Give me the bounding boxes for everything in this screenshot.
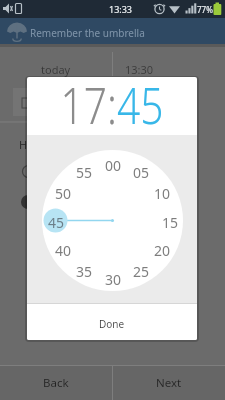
staticText: 10 bbox=[152, 184, 172, 203]
staticText: 35 bbox=[74, 262, 94, 281]
staticText: 50 bbox=[53, 184, 73, 203]
staticText: 13:30 bbox=[125, 62, 154, 77]
button[interactable]: Next bbox=[113, 366, 225, 400]
staticText: 15 bbox=[160, 213, 180, 232]
button[interactable]: Done bbox=[27, 303, 197, 340]
staticText: 13:33 bbox=[109, 3, 133, 15]
staticText: 40 bbox=[53, 241, 73, 260]
staticText: Back bbox=[43, 375, 69, 391]
staticText: Remember the umbrella bbox=[30, 26, 145, 40]
staticText: 17:45 bbox=[60, 77, 163, 130]
staticText: today bbox=[41, 62, 71, 77]
staticText: 55 bbox=[74, 163, 94, 182]
staticText: 00 bbox=[103, 156, 123, 175]
button[interactable]: Back bbox=[0, 366, 112, 400]
staticText: 30 bbox=[103, 270, 123, 289]
staticText: 25 bbox=[131, 262, 151, 281]
staticText: 20 bbox=[152, 241, 172, 260]
staticText: Done bbox=[99, 317, 125, 331]
staticText: H bbox=[19, 137, 28, 152]
staticText: 45 bbox=[46, 213, 66, 232]
staticText: Next bbox=[156, 375, 182, 391]
staticText: 77% bbox=[197, 4, 213, 15]
staticText: 05 bbox=[131, 163, 151, 182]
